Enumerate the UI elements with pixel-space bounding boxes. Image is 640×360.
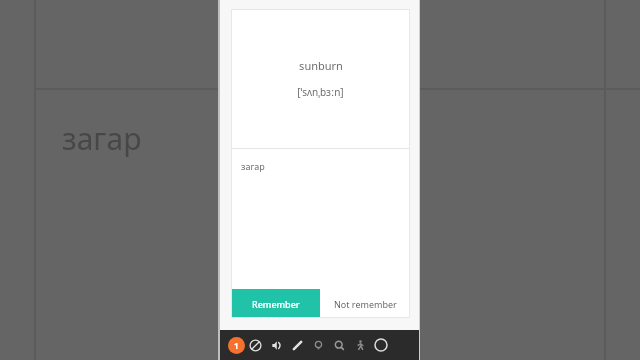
button[interactable]: Remember: [231, 289, 320, 318]
button[interactable]: Idea: [308, 335, 329, 356]
button[interactable]: Edit: [287, 335, 308, 356]
button[interactable]: Not remember: [320, 289, 410, 318]
staticText: sunburn: [299, 58, 343, 73]
button[interactable]: Search: [329, 335, 350, 356]
button[interactable]: Timer: [371, 335, 391, 355]
button[interactable]: Walk: [350, 335, 371, 356]
staticText: Not remember: [334, 298, 397, 310]
staticText: Remember: [252, 298, 300, 310]
staticText: загар: [62, 118, 142, 159]
staticText: 1: [234, 340, 239, 351]
staticText: [ˈsʌnˌbɜːn]: [297, 85, 344, 99]
button[interactable]: Volume: [266, 335, 287, 356]
staticText: загар: [241, 160, 265, 172]
button[interactable]: Notifications: [228, 337, 245, 354]
button[interactable]: Block: [245, 335, 266, 356]
